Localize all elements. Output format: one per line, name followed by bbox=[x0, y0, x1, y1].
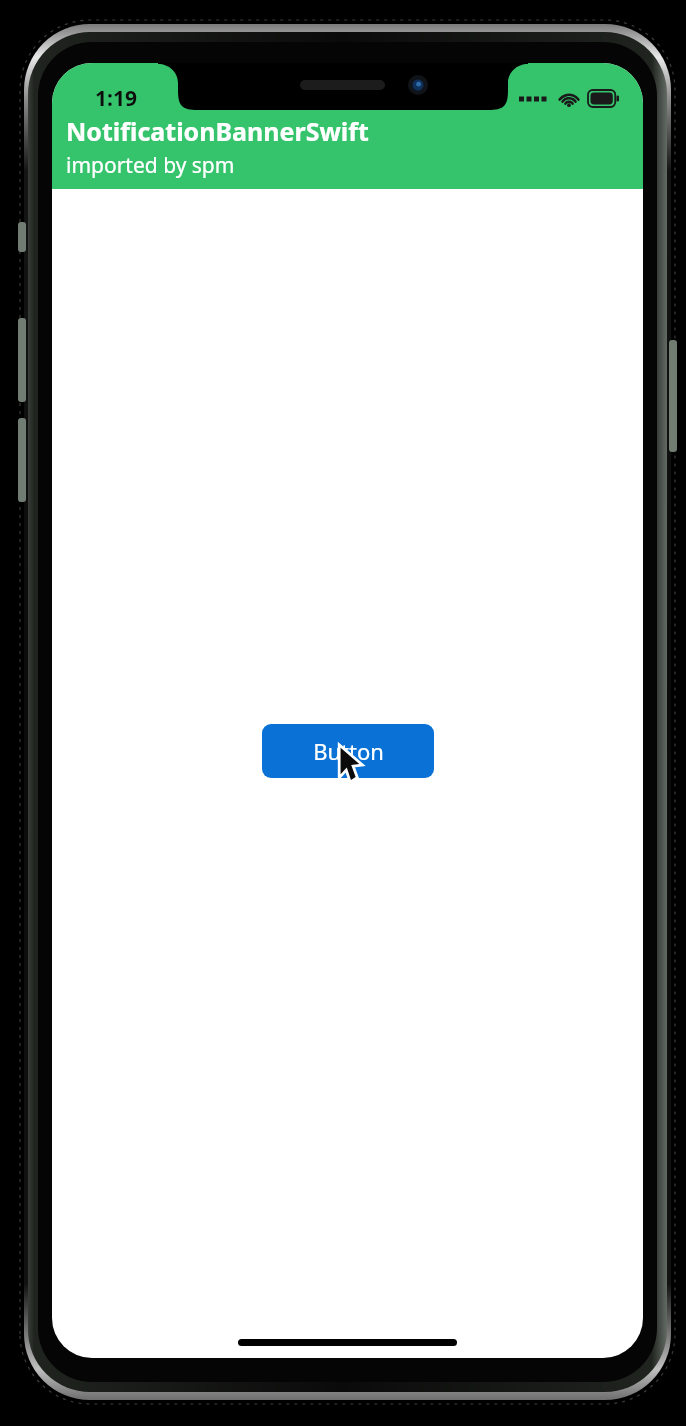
staticText: Button bbox=[313, 736, 384, 766]
staticText: 1:19 bbox=[95, 84, 137, 113]
button[interactable]: 1:19 bbox=[52, 63, 643, 189]
staticText: imported by spm bbox=[66, 151, 235, 180]
staticText: NotificationBannerSwift bbox=[66, 114, 369, 148]
button[interactable]: Button bbox=[262, 724, 434, 778]
